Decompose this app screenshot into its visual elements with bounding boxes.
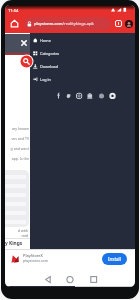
staticText: y Kings	[5, 240, 23, 247]
button[interactable]	[19, 38, 29, 48]
button[interactable]	[83, 273, 103, 287]
staticText: app. Is the	[5, 156, 29, 162]
staticText: ves and TV	[5, 136, 29, 142]
staticText: d with	[5, 228, 28, 234]
button[interactable]	[19, 54, 34, 69]
staticText: 11:54	[8, 8, 19, 13]
staticText: PlayStoreX	[23, 253, 43, 258]
button[interactable]	[56, 92, 122, 101]
staticText: Install	[108, 256, 121, 262]
button[interactable]	[125, 20, 133, 28]
button[interactable]	[114, 19, 123, 28]
staticText: g and want	[5, 146, 29, 152]
staticText: Categories	[40, 51, 60, 56]
button[interactable]	[9, 18, 20, 29]
staticText: Download	[40, 64, 59, 69]
button[interactable]: Log in	[32, 74, 92, 84]
button[interactable]: Home	[32, 35, 92, 45]
button[interactable]: playstorex.com/realitykings.apk	[24, 17, 111, 30]
button[interactable]	[39, 273, 59, 287]
button[interactable]	[60, 273, 80, 287]
staticText: Log in	[40, 77, 51, 82]
staticText: Home	[40, 38, 51, 43]
button[interactable]: Download	[32, 61, 92, 71]
staticText: playstorex.com	[23, 258, 49, 263]
button[interactable]: Install	[102, 253, 127, 265]
staticText: playstorex.com/realitykings.apk	[34, 21, 94, 26]
button[interactable]: PlayStoreX	[5, 249, 134, 269]
staticText: roid	[5, 233, 28, 239]
staticText: ary known	[5, 126, 29, 132]
button[interactable]: Categories	[32, 48, 92, 58]
